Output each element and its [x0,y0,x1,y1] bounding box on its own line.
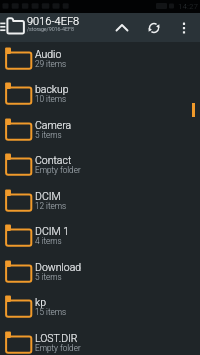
staticText: Empty folder [35,165,81,175]
staticText: DCIM [35,190,61,202]
button[interactable]: Refresh [141,13,167,42]
staticText: Download [35,261,82,273]
button[interactable]: Camera [0,113,200,148]
button[interactable]: Navigate up [109,13,135,42]
staticText: 15 items [35,307,67,317]
button[interactable]: DCIM [0,184,200,219]
staticText: DCIM 1 [35,225,69,237]
staticText: Camera [35,119,72,131]
staticText: 4 items [35,236,62,246]
staticText: kp [35,296,46,308]
staticText: Empty folder [35,343,81,353]
staticText: Audio [35,48,62,60]
button[interactable]: kp [0,290,200,325]
button[interactable]: More options [171,13,197,42]
button[interactable]: LOST.DIR [0,326,200,355]
staticText: LOST.DIR [35,332,78,344]
staticText: 14:27 [178,2,198,11]
staticText: backup [35,83,69,95]
staticText: 9016-4EF8 [27,15,115,28]
staticText: Contact [35,154,72,166]
staticText: 12 items [35,201,67,211]
button[interactable]: DCIM 1 [0,219,200,254]
staticText: 5 items [35,272,62,282]
button[interactable]: Storage [0,13,26,42]
button[interactable]: Download [0,255,200,290]
staticText: 5 items [35,130,62,140]
button[interactable]: Audio [0,42,200,77]
staticText: 29 items [35,59,67,69]
staticText: /storage/9016-4EF8 [27,26,115,32]
button[interactable]: Contact [0,148,200,183]
staticText: 10 items [35,94,67,104]
button[interactable]: backup [0,77,200,112]
